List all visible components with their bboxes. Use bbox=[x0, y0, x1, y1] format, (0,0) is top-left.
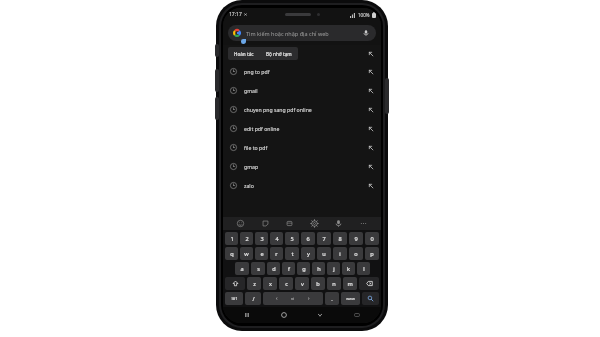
staticText: o bbox=[354, 250, 358, 258]
button[interactable]: Voice input bbox=[332, 217, 345, 230]
staticText: 6 bbox=[306, 235, 310, 243]
button[interactable]: o bbox=[349, 247, 363, 260]
button[interactable]: Keyboard layout bbox=[344, 307, 370, 323]
button[interactable]: n bbox=[327, 277, 341, 290]
button[interactable]: Insert suggestion bbox=[368, 88, 374, 94]
button[interactable]: r bbox=[270, 247, 283, 260]
button[interactable]: g bbox=[297, 262, 310, 275]
button[interactable]: 3 bbox=[255, 232, 268, 245]
button[interactable]: b bbox=[311, 277, 325, 290]
staticText: q bbox=[230, 250, 234, 258]
button[interactable]: Hoàn tác bbox=[228, 49, 260, 59]
button[interactable]: 9 bbox=[349, 232, 363, 245]
button[interactable]: chuyen png sang pdf online bbox=[223, 100, 381, 119]
button[interactable]: www bbox=[341, 292, 360, 305]
button[interactable]: . bbox=[325, 292, 339, 305]
staticText: n bbox=[332, 280, 336, 288]
staticText: 8 bbox=[338, 235, 342, 243]
button[interactable]: Search bbox=[362, 292, 379, 305]
button[interactable]: f bbox=[282, 262, 295, 275]
button[interactable]: Insert suggestion bbox=[368, 69, 374, 75]
button[interactable]: c bbox=[279, 277, 293, 290]
button[interactable]: Home bbox=[271, 307, 297, 323]
button[interactable]: Shift bbox=[225, 277, 245, 290]
button[interactable]: file to pdf bbox=[223, 138, 381, 157]
button[interactable]: t bbox=[285, 247, 299, 260]
button[interactable]: Voice search bbox=[361, 28, 371, 38]
button[interactable]: Hide keyboard bbox=[307, 307, 333, 323]
button[interactable]: Stickers bbox=[259, 217, 272, 230]
button[interactable]: 8 bbox=[333, 232, 347, 245]
button[interactable]: m bbox=[343, 277, 357, 290]
button[interactable]: Insert suggestion bbox=[368, 164, 374, 170]
button[interactable]: 6 bbox=[301, 232, 315, 245]
staticText: b bbox=[316, 280, 320, 288]
button[interactable]: i bbox=[333, 247, 347, 260]
staticText: gmap bbox=[244, 163, 368, 170]
button[interactable]: gmail bbox=[223, 81, 381, 100]
button[interactable]: Backspace bbox=[359, 277, 379, 290]
button[interactable]: q bbox=[225, 247, 238, 260]
button[interactable]: 5 bbox=[285, 232, 299, 245]
button[interactable]: png to pdf bbox=[223, 62, 381, 81]
staticText: Bộ nhớ tạm bbox=[266, 51, 292, 57]
staticText: d bbox=[272, 265, 276, 273]
button[interactable]: s bbox=[251, 262, 265, 275]
button[interactable]: 7 bbox=[317, 232, 331, 245]
button[interactable]: Insert suggestion bbox=[368, 126, 374, 132]
button[interactable]: a bbox=[235, 262, 249, 275]
staticText: z bbox=[253, 280, 256, 288]
button[interactable]: Emoji bbox=[234, 217, 247, 230]
button[interactable]: Bộ nhớ tạm bbox=[260, 49, 298, 59]
button[interactable]: Clipboard bbox=[283, 217, 296, 230]
button[interactable]: / bbox=[245, 292, 261, 305]
button[interactable]: k bbox=[342, 262, 355, 275]
button[interactable]: Space bbox=[263, 292, 323, 305]
staticText: k bbox=[347, 265, 350, 273]
staticText: vi bbox=[291, 296, 295, 302]
staticText: 100% bbox=[358, 12, 370, 18]
button[interactable]: w bbox=[240, 247, 253, 260]
button[interactable]: 0 bbox=[365, 232, 379, 245]
button[interactable]: Insert suggestion bbox=[368, 51, 374, 57]
staticText: p bbox=[370, 250, 374, 258]
button[interactable]: 2 bbox=[240, 232, 253, 245]
staticText: › bbox=[308, 295, 310, 302]
button[interactable]: edit pdf online bbox=[223, 119, 381, 138]
button[interactable]: e bbox=[255, 247, 268, 260]
staticText: 2 bbox=[245, 235, 249, 243]
button[interactable]: u bbox=[317, 247, 331, 260]
button[interactable]: More options bbox=[357, 217, 370, 230]
button[interactable]: x bbox=[263, 277, 277, 290]
staticText: file to pdf bbox=[244, 144, 368, 151]
button[interactable]: j bbox=[327, 262, 340, 275]
staticText: x bbox=[269, 280, 272, 288]
staticText: w bbox=[244, 250, 249, 258]
button[interactable]: Tìm kiếm hoặc nhập địa chỉ web bbox=[228, 25, 376, 41]
button[interactable]: Insert suggestion bbox=[368, 145, 374, 151]
staticText: h bbox=[317, 265, 321, 273]
button[interactable]: 4 bbox=[270, 232, 283, 245]
button[interactable]: gmap bbox=[223, 157, 381, 176]
button[interactable]: Insert suggestion bbox=[368, 183, 374, 189]
button[interactable]: zalo bbox=[223, 176, 381, 195]
button[interactable]: 1 bbox=[225, 232, 238, 245]
button[interactable]: z bbox=[247, 277, 261, 290]
button[interactable]: h bbox=[312, 262, 325, 275]
button[interactable]: y bbox=[301, 247, 315, 260]
button[interactable]: !#1 bbox=[225, 292, 243, 305]
button[interactable]: v bbox=[295, 277, 309, 290]
button[interactable]: Recent apps bbox=[234, 307, 260, 323]
staticText: 5 bbox=[290, 235, 294, 243]
button[interactable]: Insert suggestion bbox=[368, 107, 374, 113]
staticText: y bbox=[307, 250, 310, 258]
staticText: 1 bbox=[230, 235, 234, 243]
button[interactable]: p bbox=[365, 247, 379, 260]
staticText: c bbox=[285, 280, 288, 288]
staticText: v bbox=[301, 280, 304, 288]
button[interactable]: Settings bbox=[308, 217, 321, 230]
staticText: 7 bbox=[322, 235, 326, 243]
button[interactable]: l bbox=[357, 262, 370, 275]
staticText: . bbox=[331, 295, 333, 303]
button[interactable]: d bbox=[267, 262, 280, 275]
